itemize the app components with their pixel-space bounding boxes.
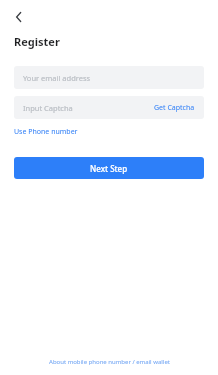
staticText: About mobile phone number / email wallet <box>49 358 170 366</box>
staticText: Register <box>14 34 60 49</box>
button[interactable]: Your email address <box>14 66 204 89</box>
button[interactable]: Input Captcha <box>23 103 73 113</box>
staticText: Get Captcha <box>154 103 195 113</box>
button[interactable]: Back <box>6 4 32 30</box>
button[interactable]: Use Phone number <box>14 127 78 137</box>
staticText: Your email address <box>23 73 91 83</box>
staticText: Use Phone number <box>14 127 78 137</box>
button[interactable]: About mobile phone number / email wallet <box>0 358 218 375</box>
staticText: Next Step <box>90 163 128 174</box>
button[interactable]: Next Step <box>14 157 204 179</box>
button[interactable]: Get Captcha <box>154 103 195 113</box>
